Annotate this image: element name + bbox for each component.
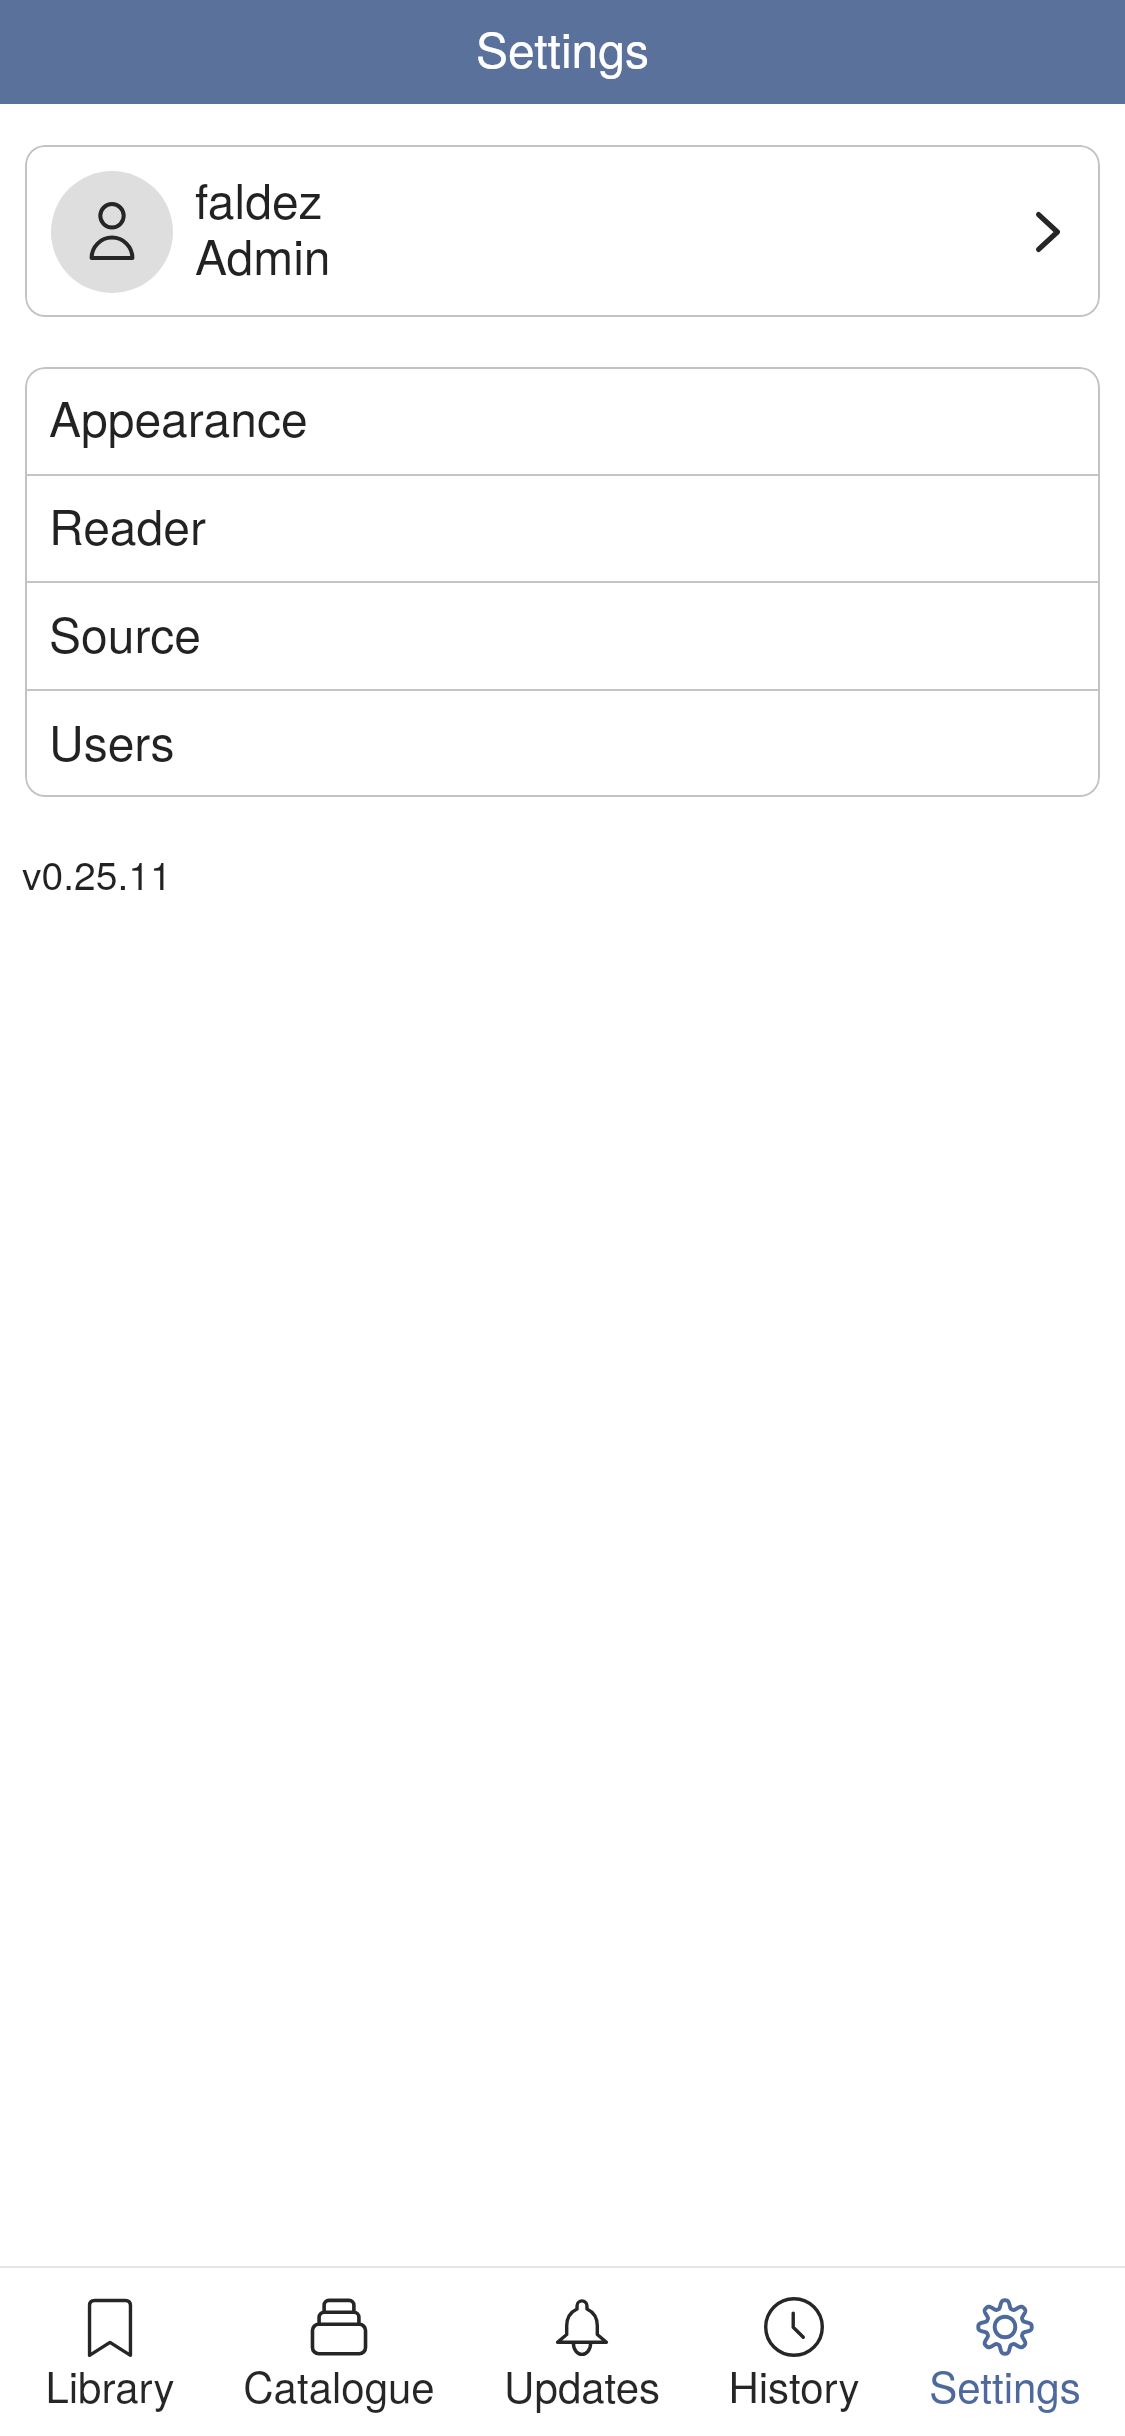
staticText: History — [679, 2355, 909, 2415]
staticText: Updates — [467, 2355, 697, 2415]
staticText: Source — [49, 598, 201, 667]
staticText: Appearance — [49, 382, 308, 451]
button[interactable]: Settings — [890, 2280, 1120, 2428]
button[interactable]: Users — [25, 691, 1100, 797]
staticText: faldez Admin — [195, 164, 331, 289]
button[interactable]: Catalogue — [224, 2280, 454, 2428]
staticText: Catalogue — [224, 2355, 454, 2415]
staticText: Settings — [0, 13, 1125, 82]
staticText: Users — [49, 706, 175, 775]
staticText: Settings — [890, 2355, 1120, 2415]
staticText: Library — [0, 2355, 225, 2415]
button[interactable]: faldez Admin — [25, 145, 1100, 317]
other: Open account — [1036, 212, 1060, 252]
button[interactable]: Reader — [25, 476, 1100, 581]
staticText: v0.25.11 — [22, 845, 172, 901]
button[interactable]: Source — [25, 583, 1100, 689]
button[interactable]: History — [679, 2280, 909, 2428]
button[interactable]: Library — [0, 2280, 225, 2428]
staticText: Reader — [49, 490, 206, 559]
button[interactable]: Appearance — [25, 367, 1100, 474]
button[interactable]: Updates — [467, 2280, 697, 2428]
